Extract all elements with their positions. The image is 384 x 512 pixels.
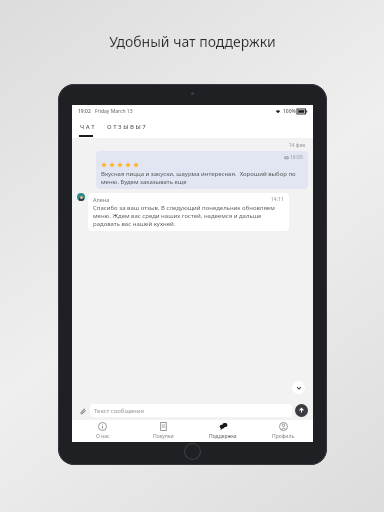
staticText: Алена <box>93 196 110 203</box>
staticText: О Т З Ы В Ы 7 <box>107 123 146 131</box>
staticText: О нас <box>96 433 110 440</box>
button[interactable]: 16:05 <box>96 151 308 189</box>
button[interactable]: Send message <box>295 404 308 417</box>
button[interactable]: Поддержка <box>193 420 253 442</box>
staticText: 14:11 <box>271 196 284 203</box>
staticText: Покупки <box>153 433 174 440</box>
staticText: Ч А Т <box>80 123 95 131</box>
staticText: Friday March 13 <box>95 108 133 115</box>
staticText: Текст сообщения <box>94 407 144 415</box>
button[interactable]: О Т З Ы В Ы 7 <box>105 120 148 134</box>
staticText: 19:02 <box>78 108 91 115</box>
staticText: Вкусная пицца и закуски, шаурма интересн… <box>101 170 303 186</box>
button[interactable]: Алена <box>88 193 289 231</box>
button[interactable]: Attach file <box>77 405 88 416</box>
staticText: 100% <box>283 108 296 115</box>
staticText: Удобный чат поддержки <box>109 32 276 51</box>
staticText: Поддержка <box>209 433 237 440</box>
staticText: 14 фев <box>72 142 305 149</box>
button[interactable]: Ч А Т <box>78 120 97 134</box>
button[interactable]: Покупки <box>133 420 193 442</box>
button[interactable]: Scroll to bottom <box>292 381 305 394</box>
button[interactable]: Текст сообщения <box>90 404 292 417</box>
staticText: 16:05 <box>290 154 303 161</box>
button[interactable]: О нас <box>72 420 133 442</box>
staticText: Спасибо за ваш отзыв. В следующий понеде… <box>93 204 284 228</box>
button[interactable]: Профиль <box>253 420 313 442</box>
staticText: Профиль <box>272 433 295 440</box>
